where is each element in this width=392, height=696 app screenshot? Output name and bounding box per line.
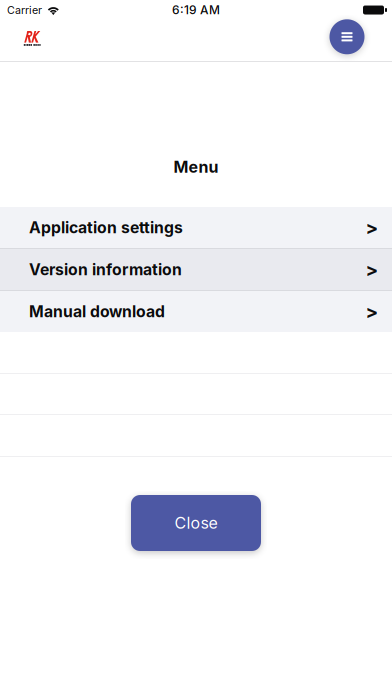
staticText: Menu: [173, 157, 218, 177]
button[interactable]: Version information: [0, 249, 392, 290]
staticText: Manual download: [29, 302, 165, 321]
staticText: 6:19 AM: [172, 3, 220, 17]
staticText: Close: [174, 513, 217, 533]
button[interactable]: Application settings: [0, 207, 392, 248]
button[interactable]: Menu: [329, 19, 364, 54]
staticText: Version information: [29, 260, 182, 279]
staticText: >: [365, 258, 378, 281]
button[interactable]: Close: [131, 495, 261, 551]
button[interactable]: Manual download: [0, 291, 392, 332]
staticText: >: [365, 300, 378, 323]
staticText: Carrier: [7, 3, 42, 16]
staticText: Application settings: [29, 218, 183, 237]
staticText: >: [365, 216, 378, 239]
